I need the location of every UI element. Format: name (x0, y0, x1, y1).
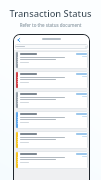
button[interactable] (15, 131, 88, 149)
button[interactable] (15, 91, 88, 109)
button[interactable] (15, 151, 88, 169)
button[interactable] (15, 51, 88, 69)
button[interactable]: Search (15, 44, 88, 49)
staticText: Refer to the status document (0, 22, 101, 28)
button[interactable] (15, 71, 88, 89)
button[interactable] (15, 111, 88, 129)
button[interactable]: Back (15, 36, 22, 43)
staticText: Transaction Status (0, 7, 101, 20)
